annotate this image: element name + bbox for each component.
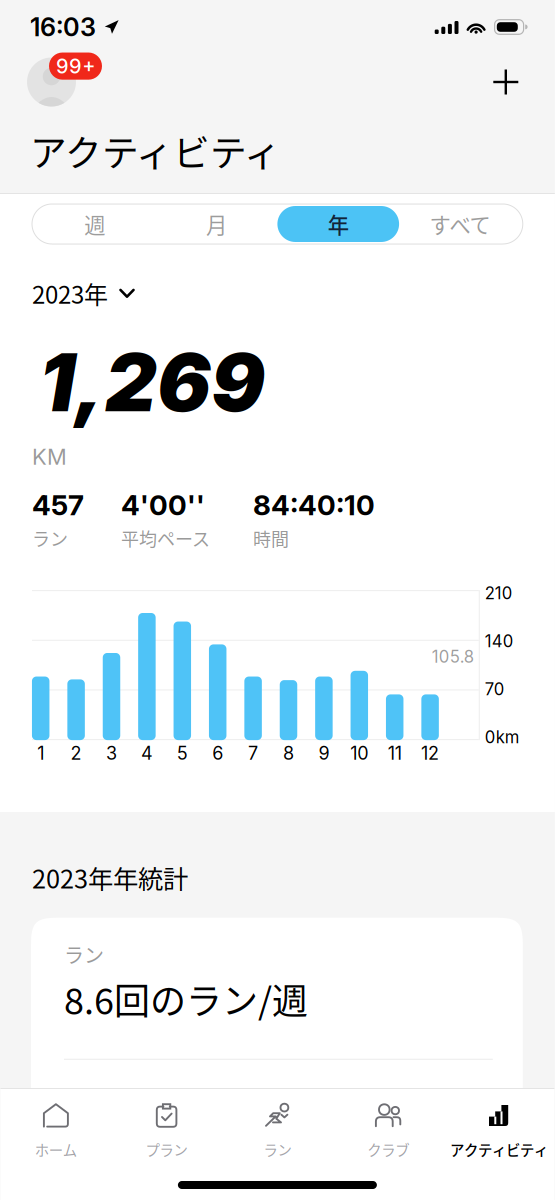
staticText: 84:40:10 xyxy=(253,488,375,522)
staticText: 週 xyxy=(84,209,105,239)
staticText: 140 xyxy=(485,631,514,651)
staticText: 2 xyxy=(71,742,82,764)
staticText: 70 xyxy=(485,679,505,699)
button[interactable]: 週 xyxy=(34,206,156,242)
staticText: 1,269 xyxy=(39,334,265,431)
staticText: 6 xyxy=(212,742,223,764)
button[interactable]: クラブ xyxy=(333,1089,444,1163)
staticText: 0km xyxy=(485,727,520,747)
staticText: 月 xyxy=(206,209,227,239)
button[interactable]: ラン xyxy=(222,1089,333,1163)
staticText: 2023年 xyxy=(32,276,108,311)
button[interactable]: 年 xyxy=(277,206,399,242)
staticText: 3 xyxy=(106,742,117,764)
staticText: 4'00'' xyxy=(121,488,205,522)
staticText: 16:03 xyxy=(30,12,96,42)
staticText: 年 xyxy=(328,209,349,239)
button[interactable]: プラン xyxy=(111,1089,222,1163)
staticText: 11 xyxy=(388,742,402,764)
staticText: 平均ペース xyxy=(121,525,210,551)
staticText: 4 xyxy=(141,742,153,764)
staticText: ラン xyxy=(64,940,104,969)
staticText: ラン xyxy=(263,1139,291,1160)
staticText: アクティビティ xyxy=(30,124,281,177)
staticText: ホーム xyxy=(35,1139,77,1160)
staticText: 8.6回のラン/週 xyxy=(64,973,308,1025)
staticText: 457 xyxy=(32,488,84,522)
staticText: 10 xyxy=(350,742,368,764)
staticText: 時間 xyxy=(253,525,289,551)
staticText: すべて xyxy=(429,209,490,239)
staticText: クラブ xyxy=(367,1139,409,1160)
staticText: 5 xyxy=(177,742,188,764)
staticText: プラン xyxy=(146,1139,188,1160)
staticText: 8 xyxy=(283,742,294,764)
staticText: 1 xyxy=(37,742,44,764)
staticText: 7 xyxy=(248,742,258,764)
staticText: ラン xyxy=(32,525,68,551)
button[interactable]: Add xyxy=(483,59,529,105)
button[interactable]: すべて xyxy=(399,206,521,242)
button[interactable]: 月 xyxy=(156,206,277,242)
staticText: KM xyxy=(32,443,67,470)
staticText: アクティビティ xyxy=(450,1139,548,1160)
staticText: 105.8 xyxy=(432,647,474,667)
button[interactable]: ホーム xyxy=(0,1089,111,1163)
staticText: 12 xyxy=(421,742,439,764)
button[interactable]: Profile xyxy=(27,57,76,106)
button[interactable]: アクティビティ xyxy=(444,1089,554,1163)
staticText: 2023年年統計 xyxy=(32,859,188,896)
staticText: 99+ xyxy=(56,54,95,78)
staticText: 9 xyxy=(318,742,329,764)
staticText: 210 xyxy=(485,583,513,603)
